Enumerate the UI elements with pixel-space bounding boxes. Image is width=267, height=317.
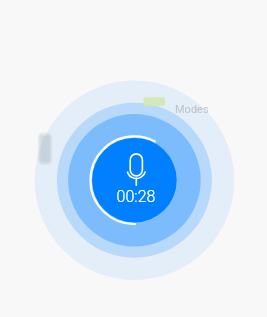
staticText: Modes <box>175 103 209 116</box>
staticText: 00:28 <box>96 187 176 207</box>
button[interactable]: Stop recording <box>92 137 175 220</box>
